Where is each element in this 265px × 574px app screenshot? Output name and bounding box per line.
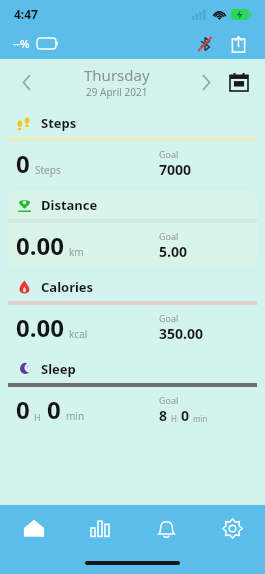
button[interactable]: Calories	[8, 273, 257, 349]
staticText: 0	[16, 147, 30, 180]
button[interactable]: Sleep	[8, 355, 257, 431]
staticText: min	[66, 409, 85, 423]
staticText: 4:47	[14, 6, 38, 22]
staticText: H	[171, 413, 177, 424]
staticText: Calories	[41, 278, 94, 296]
staticText: min	[193, 413, 208, 424]
staticText: H	[34, 411, 41, 423]
staticText: Steps	[35, 163, 61, 177]
staticText: 0	[47, 393, 61, 426]
button[interactable]: Previous day	[10, 65, 44, 99]
staticText: km	[69, 245, 84, 259]
staticText: Goal	[159, 230, 179, 242]
staticText: Goal	[159, 312, 179, 324]
button[interactable]: Steps	[8, 109, 257, 185]
staticText: 0	[181, 406, 190, 425]
button[interactable]: Statistics	[67, 505, 133, 551]
staticText: 0	[16, 393, 30, 426]
button[interactable]: Share	[224, 30, 252, 58]
staticText: 350.00	[159, 324, 203, 343]
button[interactable]: Settings	[199, 505, 265, 551]
staticText: Thursday	[84, 65, 150, 85]
button[interactable]: Pick date	[223, 66, 255, 98]
staticText: Goal	[159, 148, 179, 160]
staticText: 7000	[159, 160, 192, 179]
staticText: 0.00	[16, 311, 64, 344]
staticText: 8	[159, 406, 168, 425]
staticText: Distance	[41, 196, 98, 214]
staticText: --%	[13, 36, 30, 51]
staticText: 29 April 2021	[86, 85, 148, 99]
button[interactable]: Next day	[189, 65, 223, 99]
button[interactable]: Bluetooth off	[192, 31, 218, 57]
button[interactable]: Home	[0, 505, 67, 551]
staticText: Sleep	[41, 360, 76, 378]
staticText: Steps	[41, 114, 77, 132]
staticText: kcal	[69, 327, 88, 341]
staticText: Goal	[159, 394, 179, 406]
button[interactable]: Distance	[8, 191, 257, 267]
staticText: 5.00	[159, 242, 187, 261]
staticText: 0.00	[16, 229, 64, 262]
button[interactable]: Alerts	[133, 505, 199, 551]
